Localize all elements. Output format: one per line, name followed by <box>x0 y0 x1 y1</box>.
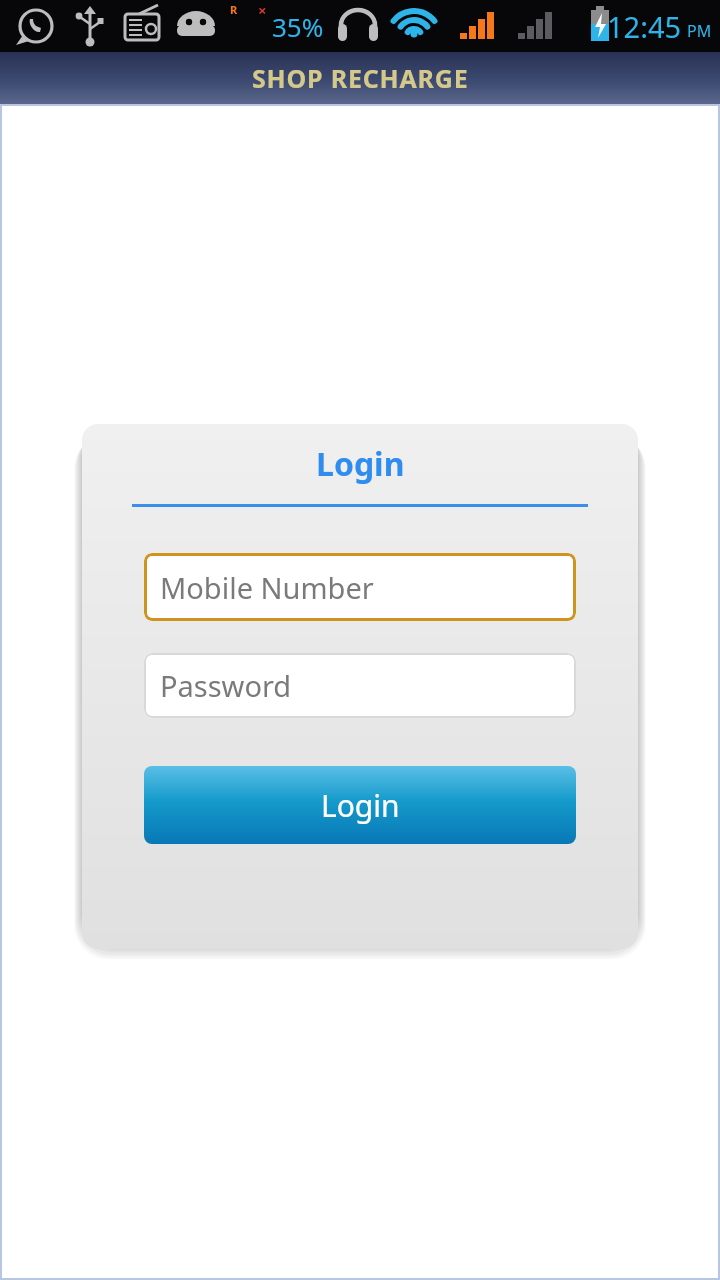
staticText: PM <box>687 20 712 42</box>
button[interactable]: Login <box>144 766 576 844</box>
staticText: 35% <box>272 9 324 44</box>
staticText: Mobile Number <box>160 568 374 607</box>
staticText: 12:45 <box>607 7 682 46</box>
staticText: Login <box>316 442 405 486</box>
staticText: SHOP RECHARGE <box>252 61 469 95</box>
staticText: Login <box>321 785 400 826</box>
staticText: × <box>258 0 267 20</box>
staticText: R <box>230 2 238 17</box>
staticText: Password <box>160 666 292 705</box>
button[interactable]: Password <box>144 653 576 718</box>
button[interactable]: Mobile Number <box>144 553 576 621</box>
